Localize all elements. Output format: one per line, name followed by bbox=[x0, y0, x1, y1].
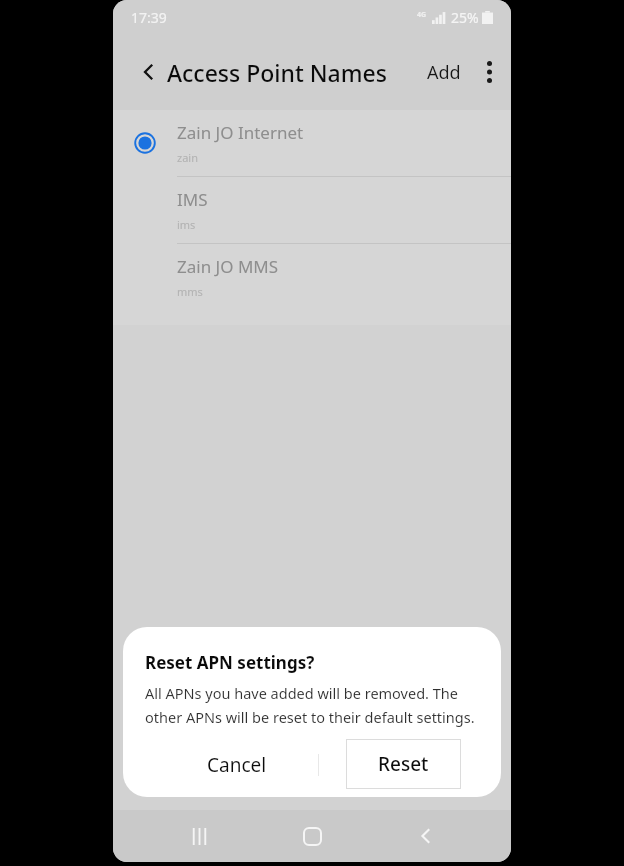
staticText: Zain JO Internet bbox=[177, 121, 304, 144]
staticText: zain bbox=[177, 150, 198, 165]
staticText: Reset bbox=[378, 751, 429, 777]
staticText: ims bbox=[177, 217, 196, 232]
staticText: Add bbox=[427, 60, 461, 85]
staticText: 4G bbox=[417, 10, 427, 20]
button[interactable]: Back bbox=[127, 50, 171, 94]
button[interactable]: Recent apps bbox=[171, 810, 227, 862]
button[interactable]: Zain JO Internet bbox=[113, 110, 511, 176]
button[interactable]: Add bbox=[421, 48, 467, 96]
button[interactable]: More options bbox=[467, 50, 511, 94]
staticText: Reset APN settings? bbox=[145, 651, 315, 674]
staticText: Access Point Names bbox=[167, 57, 387, 88]
button[interactable]: Cancel bbox=[157, 740, 317, 790]
staticText: All APNs you have added will be removed.… bbox=[145, 683, 458, 703]
staticText: IMS bbox=[177, 188, 208, 211]
button[interactable]: IMS bbox=[113, 177, 511, 243]
staticText: Zain JO MMS bbox=[177, 255, 279, 278]
staticText: mms bbox=[177, 284, 203, 299]
button[interactable]: Zain JO MMS bbox=[113, 244, 511, 310]
staticText: Cancel bbox=[207, 752, 267, 778]
button[interactable]: Back bbox=[398, 810, 454, 862]
staticText: 17:39 bbox=[131, 8, 167, 27]
button[interactable]: Reset bbox=[346, 739, 461, 789]
button[interactable]: Home bbox=[284, 810, 340, 862]
staticText: other APNs will be reset to their defaul… bbox=[145, 707, 475, 727]
staticText: 25% bbox=[451, 8, 479, 27]
